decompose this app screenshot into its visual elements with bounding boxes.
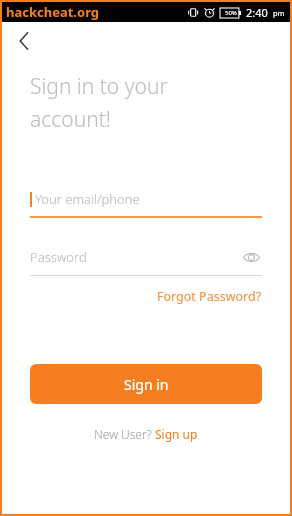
staticText: Sign in to your [30, 72, 168, 101]
button[interactable]: Forgot Password? [157, 286, 262, 307]
button[interactable]: Back [10, 26, 40, 56]
staticText: hackcheat.org [6, 3, 100, 21]
button[interactable]: Password [30, 246, 262, 276]
staticText: 50% [225, 9, 237, 17]
button[interactable]: Show password [240, 246, 262, 268]
staticText: pm [273, 8, 285, 18]
button[interactable]: Sign in [30, 364, 262, 404]
button[interactable]: Your email/phone [30, 190, 262, 218]
staticText: Password [30, 248, 240, 266]
staticText: New User? [94, 426, 155, 442]
staticText: 2:40 [246, 5, 268, 20]
staticText: Sign in [124, 375, 169, 394]
staticText: account! [30, 105, 111, 134]
staticText: Sign up [155, 426, 198, 442]
staticText: Your email/phone [35, 190, 140, 208]
staticText: Forgot Password? [157, 288, 262, 305]
button[interactable]: Sign up [155, 426, 198, 442]
